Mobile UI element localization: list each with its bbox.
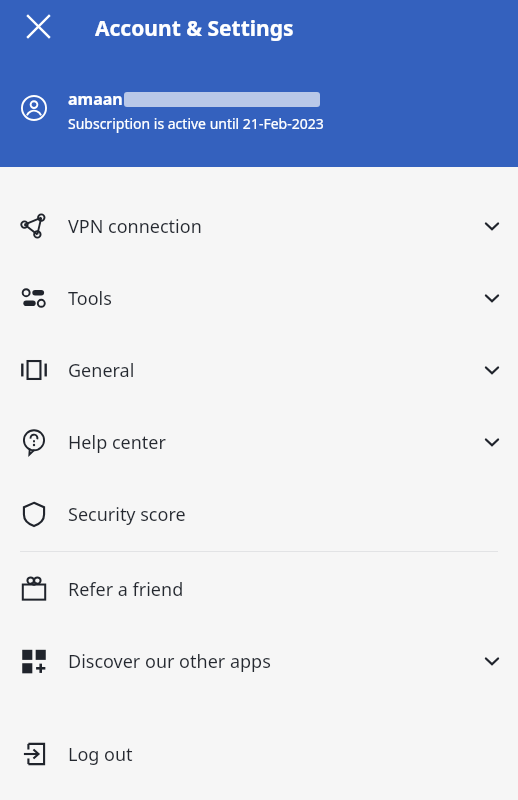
button[interactable]: Close <box>14 2 62 50</box>
staticText: Log out <box>68 742 466 767</box>
button[interactable]: Log out <box>0 718 518 790</box>
staticText: Help center <box>68 430 466 455</box>
staticText: Subscription is active until 21-Feb-2023 <box>68 114 324 133</box>
staticText: Account & Settings <box>95 14 294 43</box>
button[interactable]: amaan <box>0 88 518 140</box>
staticText: Refer a friend <box>68 577 466 602</box>
staticText: amaan <box>68 88 123 110</box>
button[interactable]: General <box>0 334 518 406</box>
button[interactable]: Help center <box>0 406 518 478</box>
staticText: Tools <box>68 286 466 311</box>
staticText: Discover our other apps <box>68 649 466 674</box>
button[interactable]: Refer a friend <box>0 553 518 625</box>
button[interactable]: VPN connection <box>0 190 518 262</box>
button[interactable]: Discover our other apps <box>0 625 518 697</box>
staticText: Security score <box>68 502 466 527</box>
button[interactable]: Tools <box>0 262 518 334</box>
button[interactable]: Security score <box>0 478 518 550</box>
staticText: VPN connection <box>68 214 466 239</box>
staticText: General <box>68 358 466 383</box>
